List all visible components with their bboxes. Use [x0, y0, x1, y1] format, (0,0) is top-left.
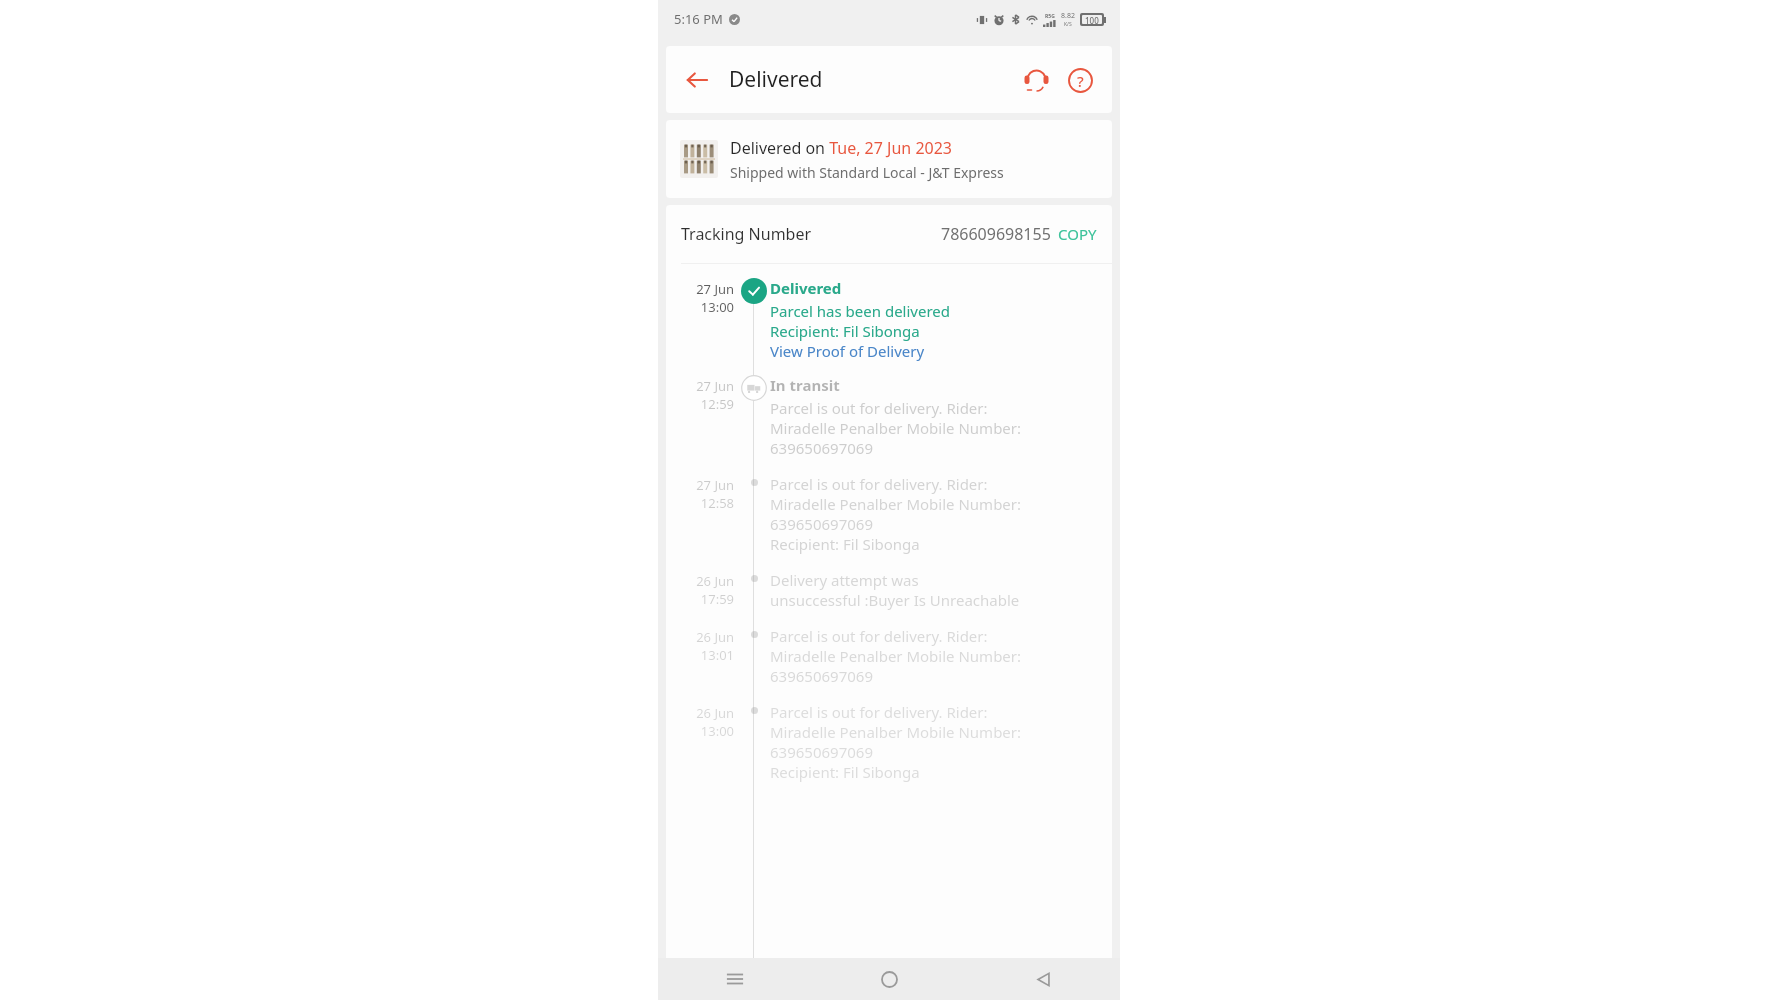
staticText: Parcel is out for delivery. Rider: — [770, 474, 988, 494]
button[interactable]: Back — [966, 958, 1120, 1000]
staticText: 27 Jun — [696, 377, 734, 395]
staticText: 17:59 — [700, 590, 734, 608]
staticText: View Proof of Delivery — [770, 341, 925, 361]
button[interactable]: Delivered on Tue, 27 Jun 2023 — [666, 120, 1112, 198]
staticText: Parcel is out for delivery. Rider: — [770, 626, 988, 646]
button[interactable]: Help — [1060, 60, 1100, 100]
staticText: K/S — [1064, 21, 1072, 28]
staticText: Delivered — [729, 65, 823, 94]
button[interactable]: Recents — [658, 958, 812, 1000]
staticText: In transit — [770, 375, 840, 395]
staticText: 639650697069 — [770, 514, 873, 534]
staticText: COPY — [1058, 224, 1097, 244]
staticText: 5:16 PM — [674, 10, 723, 28]
staticText: Miradelle Penalber Mobile Number: — [770, 494, 1022, 514]
staticText: Shipped with Standard Local - J&T Expres… — [730, 163, 1004, 182]
staticText: 26 Jun — [696, 572, 734, 590]
button[interactable]: Home — [812, 958, 966, 1000]
staticText: Miradelle Penalber Mobile Number: — [770, 646, 1022, 666]
staticText: Delivered — [770, 278, 842, 298]
staticText: Miradelle Penalber Mobile Number: — [770, 418, 1022, 438]
button[interactable]: Customer service — [1016, 60, 1056, 100]
staticText: Delivery attempt was — [770, 570, 919, 590]
staticText: Tracking Number — [681, 223, 812, 245]
staticText: 13:01 — [700, 646, 734, 664]
staticText: 13:00 — [700, 298, 734, 316]
button[interactable]: View Proof of Delivery — [770, 341, 925, 361]
button[interactable]: COPY — [1058, 224, 1097, 244]
staticText: 639650697069 — [770, 438, 873, 458]
staticText: R5G — [1045, 13, 1055, 20]
staticText: unsuccessful :Buyer Is Unreachable — [770, 590, 1020, 610]
staticText: 27 Jun — [696, 280, 734, 298]
staticText: Recipient: Fil Sibonga — [770, 762, 920, 782]
staticText: ? — [1077, 71, 1084, 91]
button[interactable]: Back — [678, 61, 716, 99]
staticText: 639650697069 — [770, 742, 873, 762]
staticText: 8.82 — [1061, 11, 1075, 21]
staticText: Parcel is out for delivery. Rider: — [770, 398, 988, 418]
staticText: 639650697069 — [770, 666, 873, 686]
staticText: 26 Jun — [696, 628, 734, 646]
staticText: Parcel is out for delivery. Rider: — [770, 702, 988, 722]
staticText: 27 Jun — [696, 476, 734, 494]
staticText: Parcel has been delivered — [770, 301, 950, 321]
staticText: 13:00 — [700, 722, 734, 740]
staticText: Recipient: Fil Sibonga — [770, 534, 920, 554]
staticText: 26 Jun — [696, 704, 734, 722]
staticText: 12:59 — [700, 395, 734, 413]
staticText: Miradelle Penalber Mobile Number: — [770, 722, 1022, 742]
staticText: Recipient: Fil Sibonga — [770, 321, 920, 341]
staticText: 12:58 — [700, 494, 734, 512]
staticText: 786609698155 — [941, 223, 1051, 245]
staticText: 100 — [1085, 15, 1099, 24]
staticText: Delivered on Tue, 27 Jun 2023 — [730, 137, 952, 159]
